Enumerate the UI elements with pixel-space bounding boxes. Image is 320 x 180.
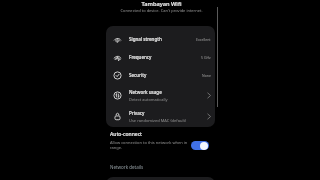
staticText: None bbox=[202, 73, 211, 78]
button[interactable]: Security bbox=[113, 66, 211, 84]
staticText: Auto-connect bbox=[110, 131, 143, 138]
button[interactable]: Privacy bbox=[113, 106, 211, 127]
staticText: Connected to device. Can't provide inter… bbox=[104, 8, 219, 13]
staticText: Use randomized MAC (default) bbox=[129, 118, 187, 123]
staticText: Signal strength bbox=[129, 36, 162, 42]
staticText: Detect automatically bbox=[129, 97, 168, 102]
staticText: Excellent bbox=[196, 37, 211, 42]
button[interactable]: Auto-connect bbox=[110, 131, 192, 150]
staticText: Security bbox=[129, 72, 147, 78]
staticText: Network details bbox=[110, 164, 144, 170]
staticText: 5 GHz bbox=[201, 55, 211, 60]
button[interactable]: Network usage bbox=[113, 84, 211, 106]
staticText: Tambayan Wifi bbox=[104, 0, 219, 8]
staticText: Frequency bbox=[129, 54, 152, 60]
button[interactable] bbox=[191, 141, 209, 150]
staticText: Network usage bbox=[129, 89, 162, 95]
staticText: Allow connection to this network when in… bbox=[110, 140, 188, 150]
button[interactable]: Frequency bbox=[113, 48, 211, 66]
button[interactable]: Signal strength bbox=[113, 30, 211, 48]
staticText: Privacy bbox=[129, 110, 145, 116]
